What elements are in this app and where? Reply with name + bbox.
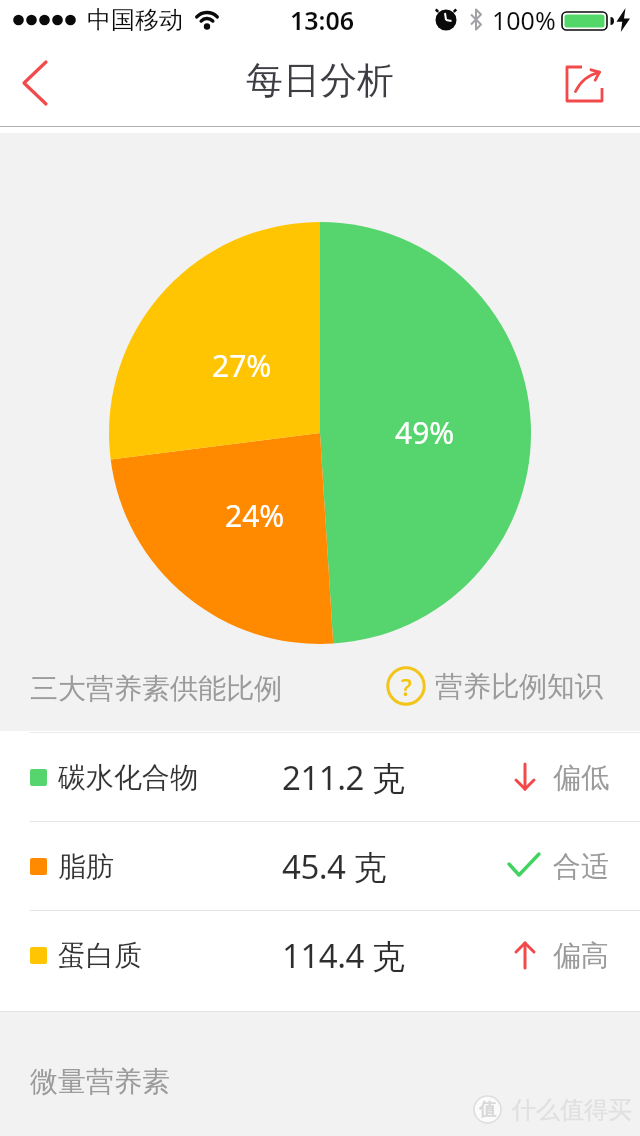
button[interactable]: 脂肪	[0, 822, 640, 910]
staticText: 24%	[225, 495, 285, 536]
staticText: ?	[401, 670, 412, 703]
staticText: 45.4 克	[282, 844, 387, 889]
staticText: 什么值得买	[512, 1095, 632, 1124]
staticText: 偏低	[553, 760, 609, 795]
staticText: 脂肪	[58, 849, 114, 884]
staticText: 值	[479, 1099, 496, 1120]
button[interactable]: ?	[385, 663, 610, 709]
button[interactable]	[564, 40, 640, 126]
staticText: 合适	[553, 849, 609, 884]
staticText: 中国移动	[87, 5, 183, 35]
staticText: 偏高	[553, 938, 609, 973]
button[interactable]: 蛋白质	[0, 911, 640, 999]
staticText: 49%	[395, 412, 455, 453]
staticText: 碳水化合物	[58, 760, 198, 795]
button[interactable]: 碳水化合物	[0, 733, 640, 821]
staticText: 微量营养素	[30, 1064, 170, 1099]
staticText: 蛋白质	[58, 938, 142, 973]
staticText: 27%	[212, 345, 272, 386]
button[interactable]	[0, 40, 60, 126]
staticText: 211.2 克	[282, 755, 405, 800]
staticText: 114.4 克	[282, 933, 405, 978]
staticText: 每日分析	[246, 57, 394, 104]
staticText: 营养比例知识	[435, 669, 603, 704]
staticText: 三大营养素供能比例	[30, 671, 282, 706]
staticText: 100%	[492, 3, 556, 37]
staticText: 13:06	[290, 3, 355, 37]
